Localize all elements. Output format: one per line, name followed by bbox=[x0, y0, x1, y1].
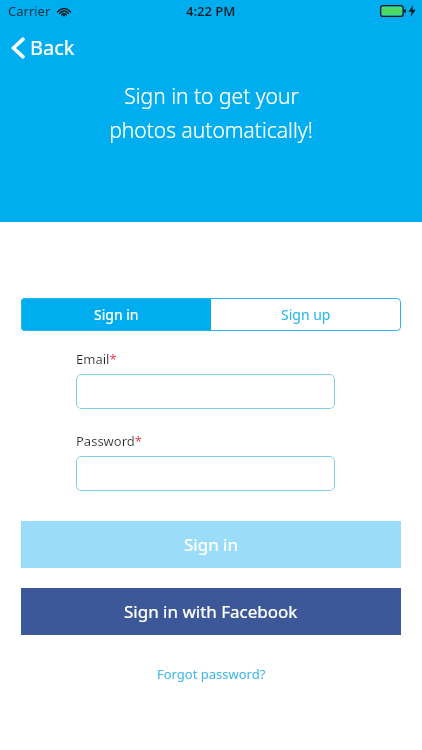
button[interactable]: Sign in bbox=[21, 521, 401, 568]
button[interactable]: Sign in with Facebook bbox=[21, 588, 401, 635]
staticText: Carrier bbox=[8, 2, 51, 20]
staticText: Sign in to get your bbox=[124, 82, 299, 111]
staticText: Email* bbox=[76, 350, 117, 368]
staticText: Password* bbox=[76, 432, 142, 450]
button[interactable]: Sign up bbox=[211, 298, 401, 331]
button[interactable]: Forgot password? bbox=[149, 661, 274, 687]
staticText: Sign up bbox=[281, 305, 331, 324]
staticText: photos automatically! bbox=[109, 116, 313, 145]
button[interactable] bbox=[76, 374, 335, 409]
staticText: Sign in bbox=[94, 305, 139, 324]
button[interactable] bbox=[76, 456, 335, 491]
staticText: Sign in bbox=[184, 533, 238, 556]
staticText: Forgot password? bbox=[157, 665, 266, 683]
button[interactable]: Back bbox=[6, 30, 81, 65]
staticText: 4:22 PM bbox=[186, 2, 236, 20]
staticText: Sign in with Facebook bbox=[124, 600, 298, 623]
button[interactable]: Sign in bbox=[21, 298, 211, 331]
staticText: Back bbox=[30, 34, 75, 61]
